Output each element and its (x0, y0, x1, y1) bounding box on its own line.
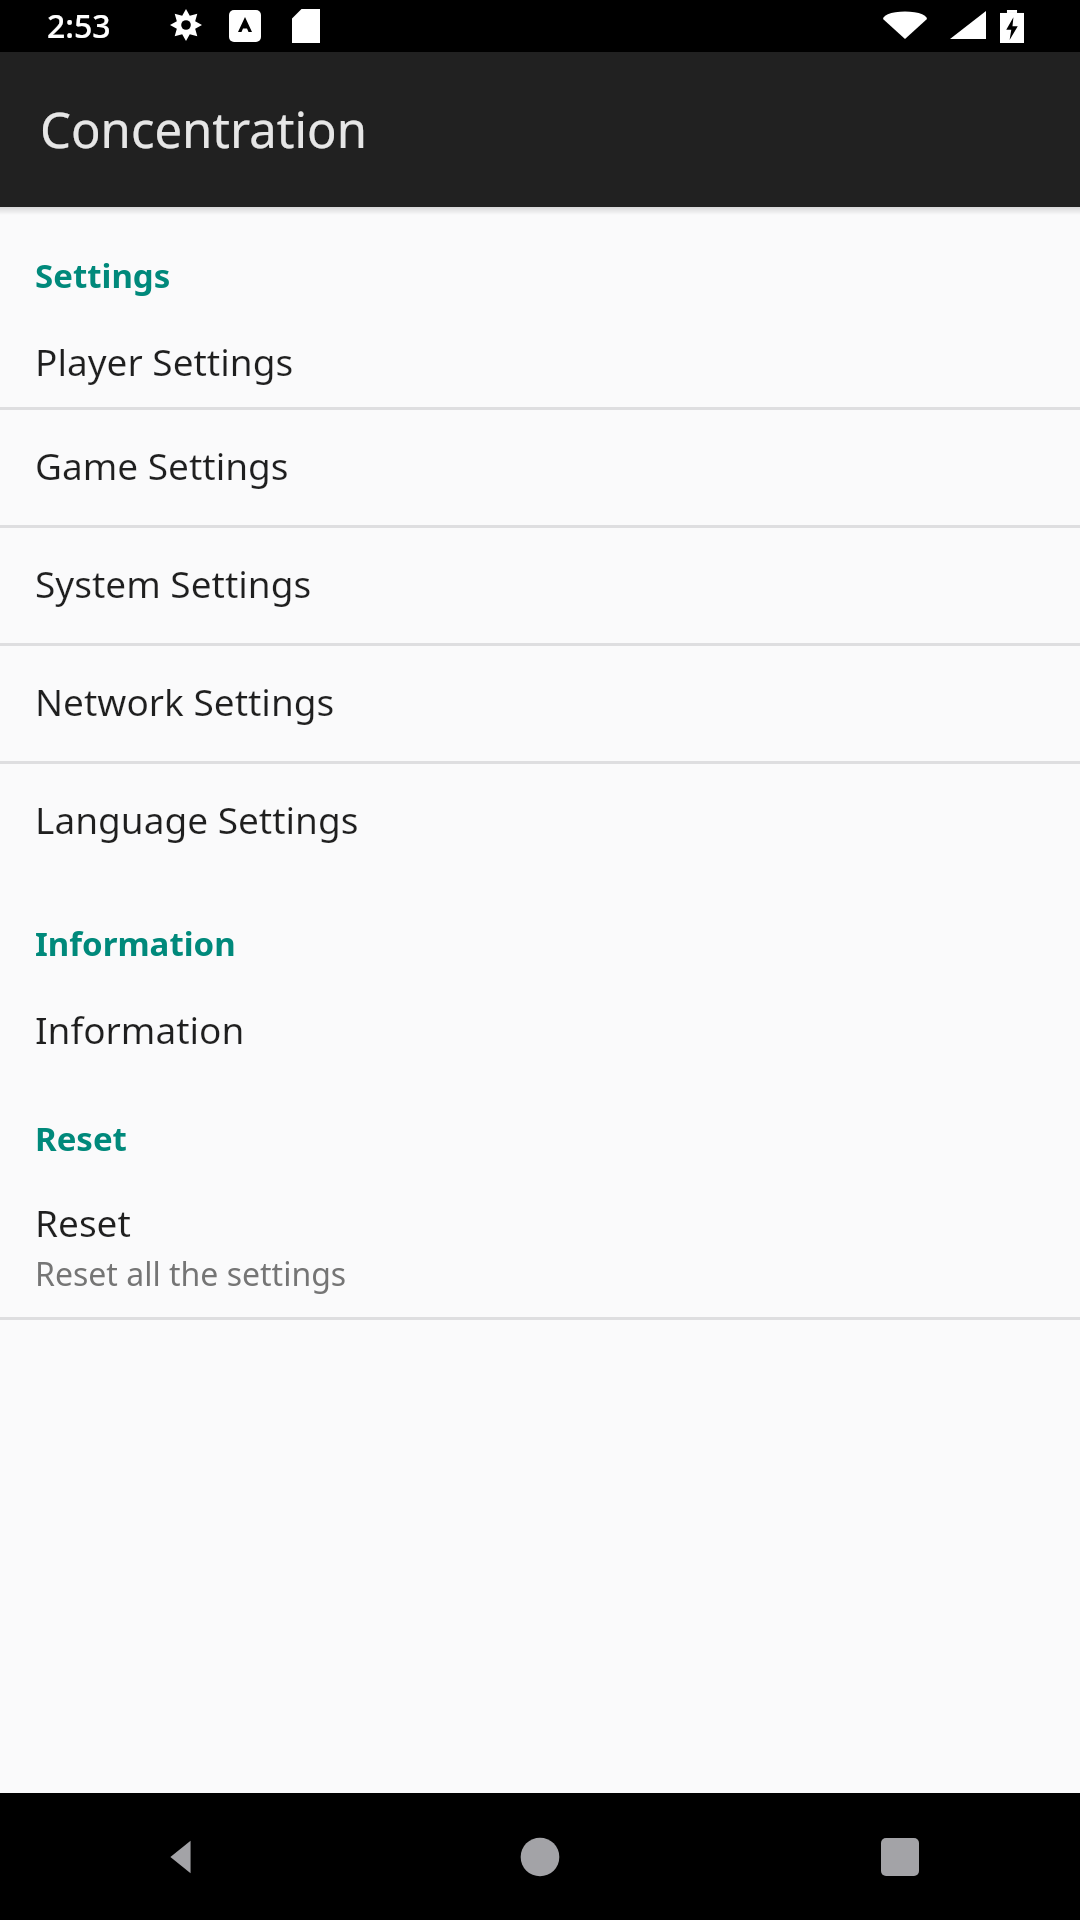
button[interactable]: Home (485, 1802, 595, 1912)
staticText: Reset (35, 1197, 131, 1247)
button[interactable]: Network Settings (0, 646, 1080, 761)
button[interactable]: Reset (0, 1187, 1080, 1317)
button[interactable]: Game Settings (0, 410, 1080, 525)
staticText: Language Settings (35, 794, 359, 844)
button[interactable]: Recent apps (845, 1802, 955, 1912)
button[interactable]: System Settings (0, 528, 1080, 643)
staticText: Reset (35, 1116, 1080, 1161)
staticText: Settings (35, 253, 1080, 298)
staticText: Network Settings (35, 676, 335, 726)
staticText: System Settings (35, 558, 312, 608)
button[interactable]: Player Settings (0, 324, 1080, 407)
staticText: Information (35, 921, 1080, 966)
staticText: Reset all the settings (35, 1252, 347, 1296)
button[interactable]: Language Settings (0, 764, 1080, 879)
staticText: 2:53 (47, 4, 111, 48)
staticText: Concentration (40, 96, 368, 163)
button[interactable]: Back (125, 1802, 235, 1912)
button[interactable]: Information (0, 992, 1080, 1072)
staticText: Player Settings (35, 336, 294, 386)
staticText: Game Settings (35, 440, 289, 490)
staticText: Information (35, 1004, 245, 1054)
